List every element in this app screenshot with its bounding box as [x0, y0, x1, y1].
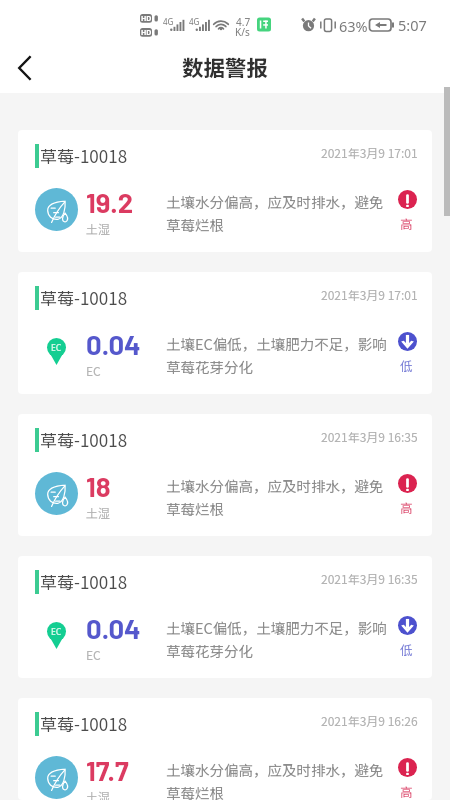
staticText: 高: [400, 782, 413, 800]
staticText: EC: [51, 626, 62, 638]
staticText: 4G: [163, 16, 174, 27]
staticText: 63%: [339, 16, 368, 36]
staticText: 土湿: [86, 220, 111, 237]
staticText: EC: [51, 342, 62, 354]
staticText: 18: [86, 469, 111, 502]
staticText: 4.7: [236, 15, 251, 29]
staticText: 草莓烂根: [166, 214, 224, 235]
staticText: 土湿: [86, 788, 111, 800]
staticText: HD: [141, 28, 152, 38]
staticText: 土壤水分偏高，应及时排水，避免: [166, 759, 384, 780]
staticText: 高: [400, 498, 413, 516]
button[interactable]: 草莓-10018: [18, 698, 432, 800]
staticText: 草莓花芽分化: [166, 356, 253, 377]
staticText: 草莓烂根: [166, 782, 224, 800]
staticText: 低: [400, 640, 413, 658]
button[interactable]: 草莓-10018: [18, 556, 432, 678]
staticText: 草莓-10018: [40, 711, 128, 736]
staticText: 草莓-10018: [40, 285, 128, 310]
button[interactable]: 草莓-10018: [18, 130, 432, 252]
staticText: 土壤EC偏低，土壤肥力不足，影响: [166, 333, 387, 354]
staticText: 土壤水分偏高，应及时排水，避免: [166, 191, 384, 212]
staticText: 2021年3月9 16:35: [321, 428, 418, 445]
staticText: 2021年3月9 17:01: [321, 144, 418, 161]
staticText: K/s: [235, 25, 250, 39]
staticText: 0.04: [86, 327, 141, 360]
staticText: 数据警报: [182, 51, 269, 82]
staticText: HD: [141, 14, 152, 24]
staticText: 草莓-10018: [40, 569, 128, 594]
staticText: 19.2: [86, 185, 134, 218]
staticText: 2021年3月9 16:35: [321, 570, 418, 587]
staticText: 2021年3月9 16:26: [321, 712, 418, 729]
staticText: 4G: [189, 16, 200, 27]
staticText: 土壤水分偏高，应及时排水，避免: [166, 475, 384, 496]
button[interactable]: Back: [8, 51, 42, 85]
staticText: 17.7: [86, 753, 129, 786]
staticText: 低: [400, 356, 413, 374]
staticText: 草莓-10018: [40, 427, 128, 452]
staticText: 5:07: [398, 15, 427, 35]
staticText: 土湿: [86, 504, 111, 521]
staticText: 高: [400, 214, 413, 232]
staticText: EC: [86, 362, 101, 379]
staticText: 土壤EC偏低，土壤肥力不足，影响: [166, 617, 387, 638]
staticText: 草莓-10018: [40, 143, 128, 168]
staticText: 草莓花芽分化: [166, 640, 253, 661]
staticText: 草莓烂根: [166, 498, 224, 519]
button[interactable]: 草莓-10018: [18, 272, 432, 394]
button[interactable]: 草莓-10018: [18, 414, 432, 536]
staticText: EC: [86, 646, 101, 663]
staticText: 0.04: [86, 611, 141, 644]
staticText: 2021年3月9 17:01: [321, 286, 418, 303]
